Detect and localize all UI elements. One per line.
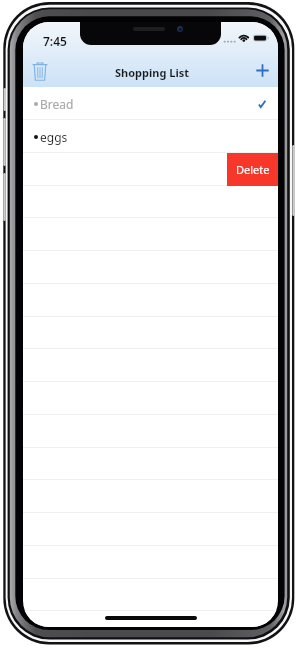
button[interactable] bbox=[23, 578, 278, 611]
button[interactable]: Delete bbox=[23, 153, 278, 186]
staticText: Bread bbox=[40, 96, 74, 112]
staticText: Delete bbox=[236, 162, 270, 177]
button[interactable]: eggs bbox=[23, 120, 278, 153]
button[interactable] bbox=[23, 316, 278, 349]
staticText: Shopping List bbox=[115, 65, 189, 80]
button[interactable]: Delete bbox=[227, 153, 278, 186]
staticText: 7:45 bbox=[43, 33, 67, 49]
button[interactable] bbox=[23, 447, 278, 480]
button[interactable]: Add item bbox=[245, 53, 278, 87]
button[interactable]: Clear list bbox=[23, 54, 57, 88]
staticText: eggs bbox=[40, 129, 68, 145]
button[interactable] bbox=[23, 185, 278, 218]
button[interactable]: Bread bbox=[23, 87, 278, 120]
